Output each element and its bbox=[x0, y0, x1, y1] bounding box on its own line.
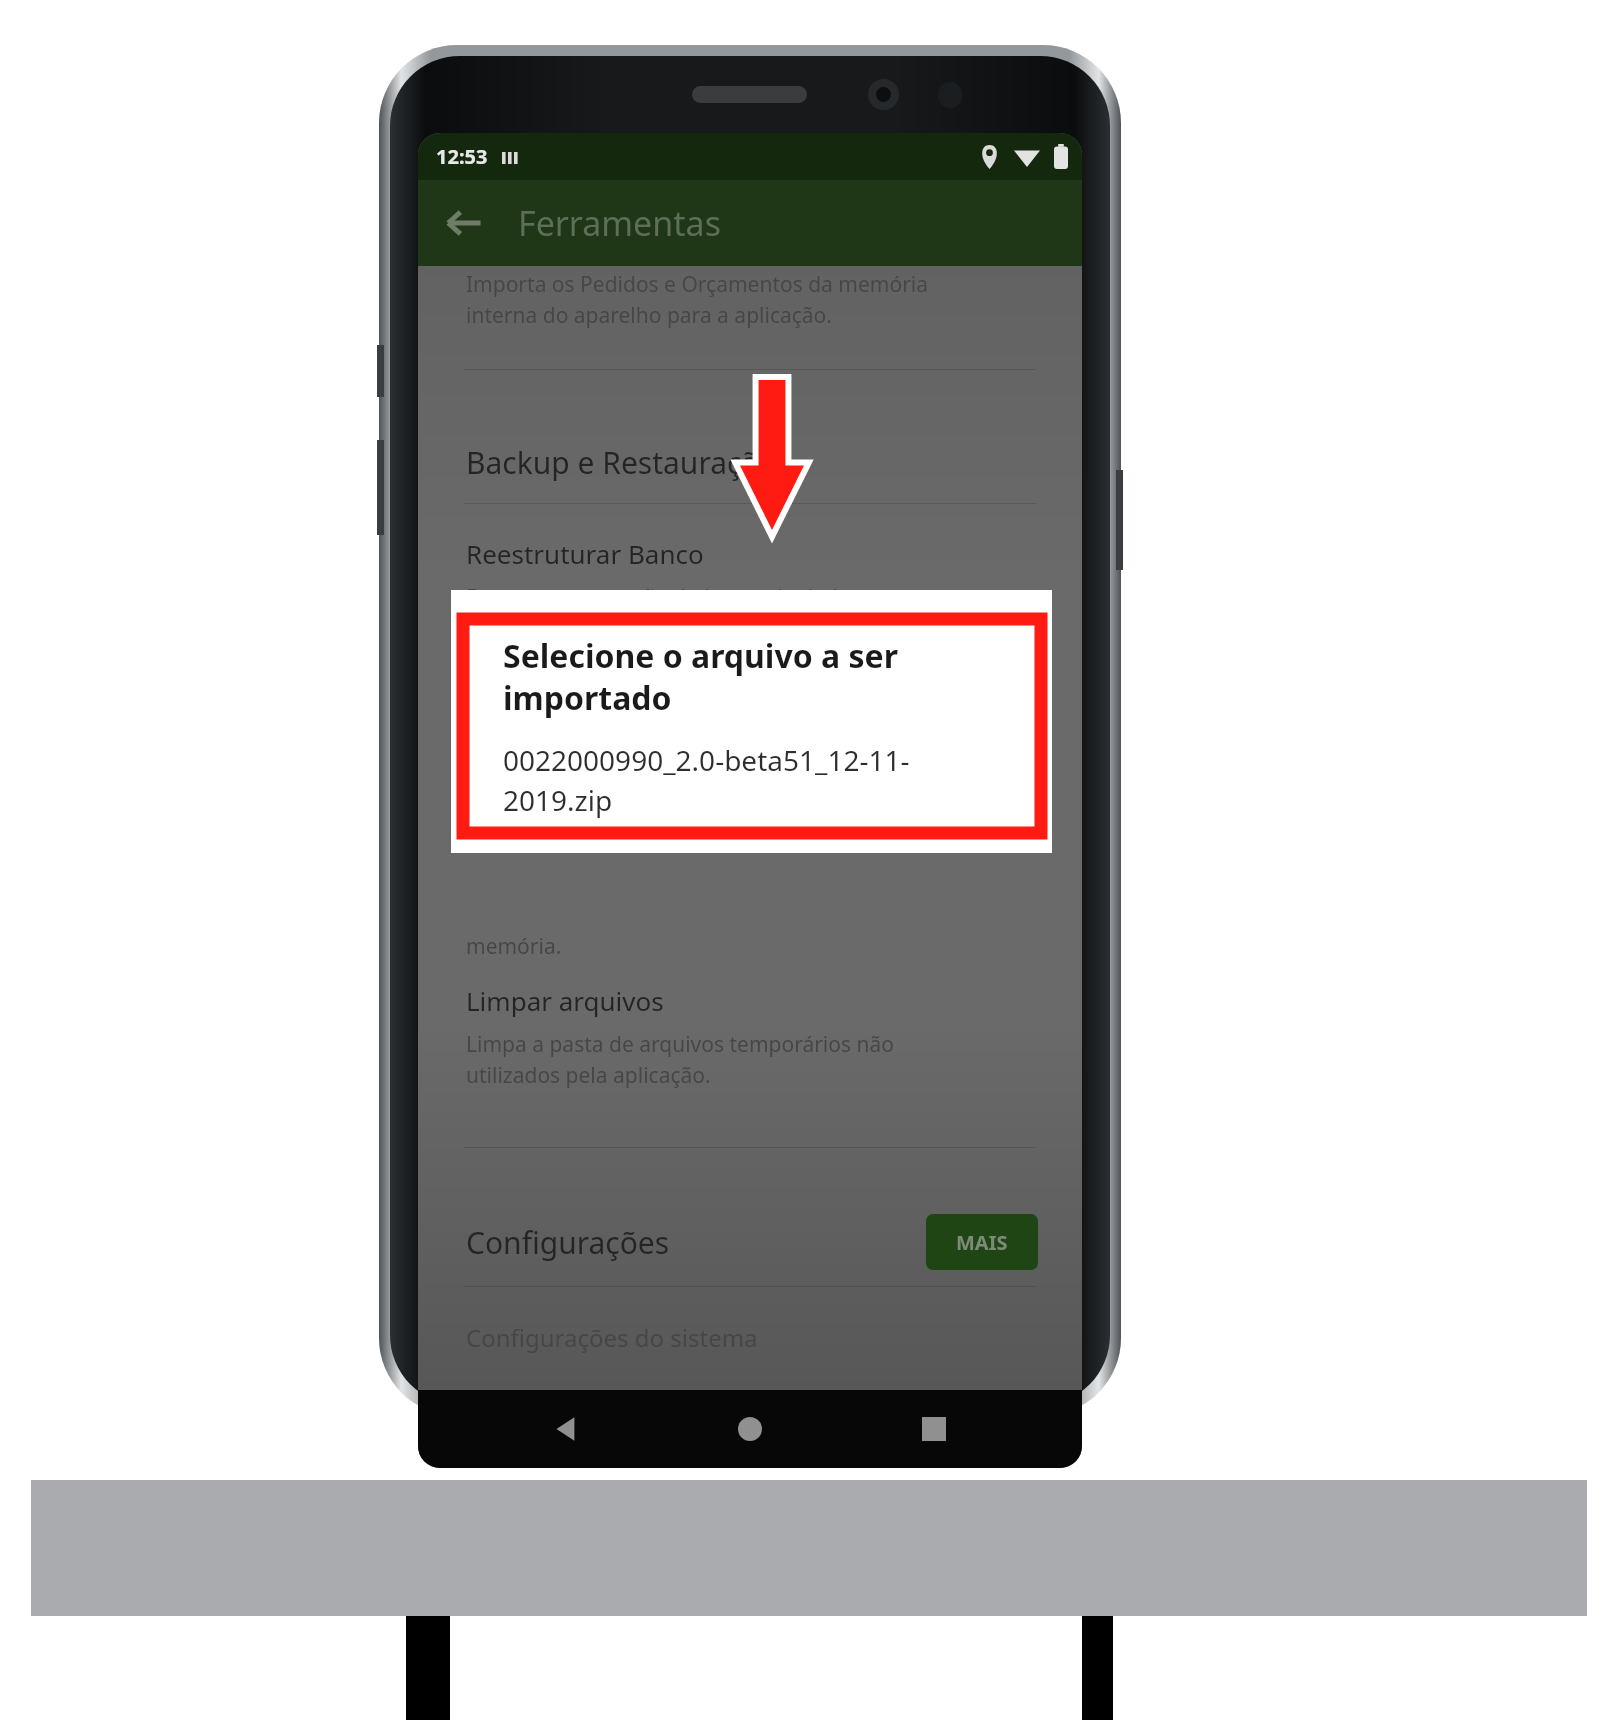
staticText: Configurações bbox=[466, 1222, 670, 1263]
staticText: Reestruturar Banco bbox=[466, 536, 704, 571]
staticText: Selecione o arquivo a ser importado bbox=[503, 634, 898, 719]
staticText: memória. bbox=[466, 932, 562, 961]
button[interactable]: MAIS bbox=[926, 1214, 1038, 1270]
staticText: MAIS bbox=[956, 1229, 1008, 1256]
button[interactable]: Voltar bbox=[436, 195, 492, 251]
staticText: Limpa a pasta de arquivos temporários nã… bbox=[466, 1030, 894, 1089]
staticText: Configurações do sistema bbox=[466, 1321, 758, 1354]
button[interactable]: Início bbox=[714, 1393, 786, 1465]
button[interactable]: 0022000990_2.0-beta51_12-11- 2019.zip bbox=[503, 741, 910, 820]
staticText: Backup e Restauração bbox=[466, 442, 777, 483]
staticText: 12:53 bbox=[436, 143, 488, 170]
staticText: Faz a reestruturação do banco de dados, … bbox=[466, 583, 867, 642]
staticText: Importa os Pedidos e Orçamentos da memór… bbox=[466, 270, 929, 329]
staticText: Ferramentas bbox=[518, 200, 721, 246]
button[interactable]: Recentes bbox=[898, 1393, 970, 1465]
button[interactable]: Voltar bbox=[530, 1393, 602, 1465]
staticText: Limpar arquivos bbox=[466, 983, 664, 1018]
